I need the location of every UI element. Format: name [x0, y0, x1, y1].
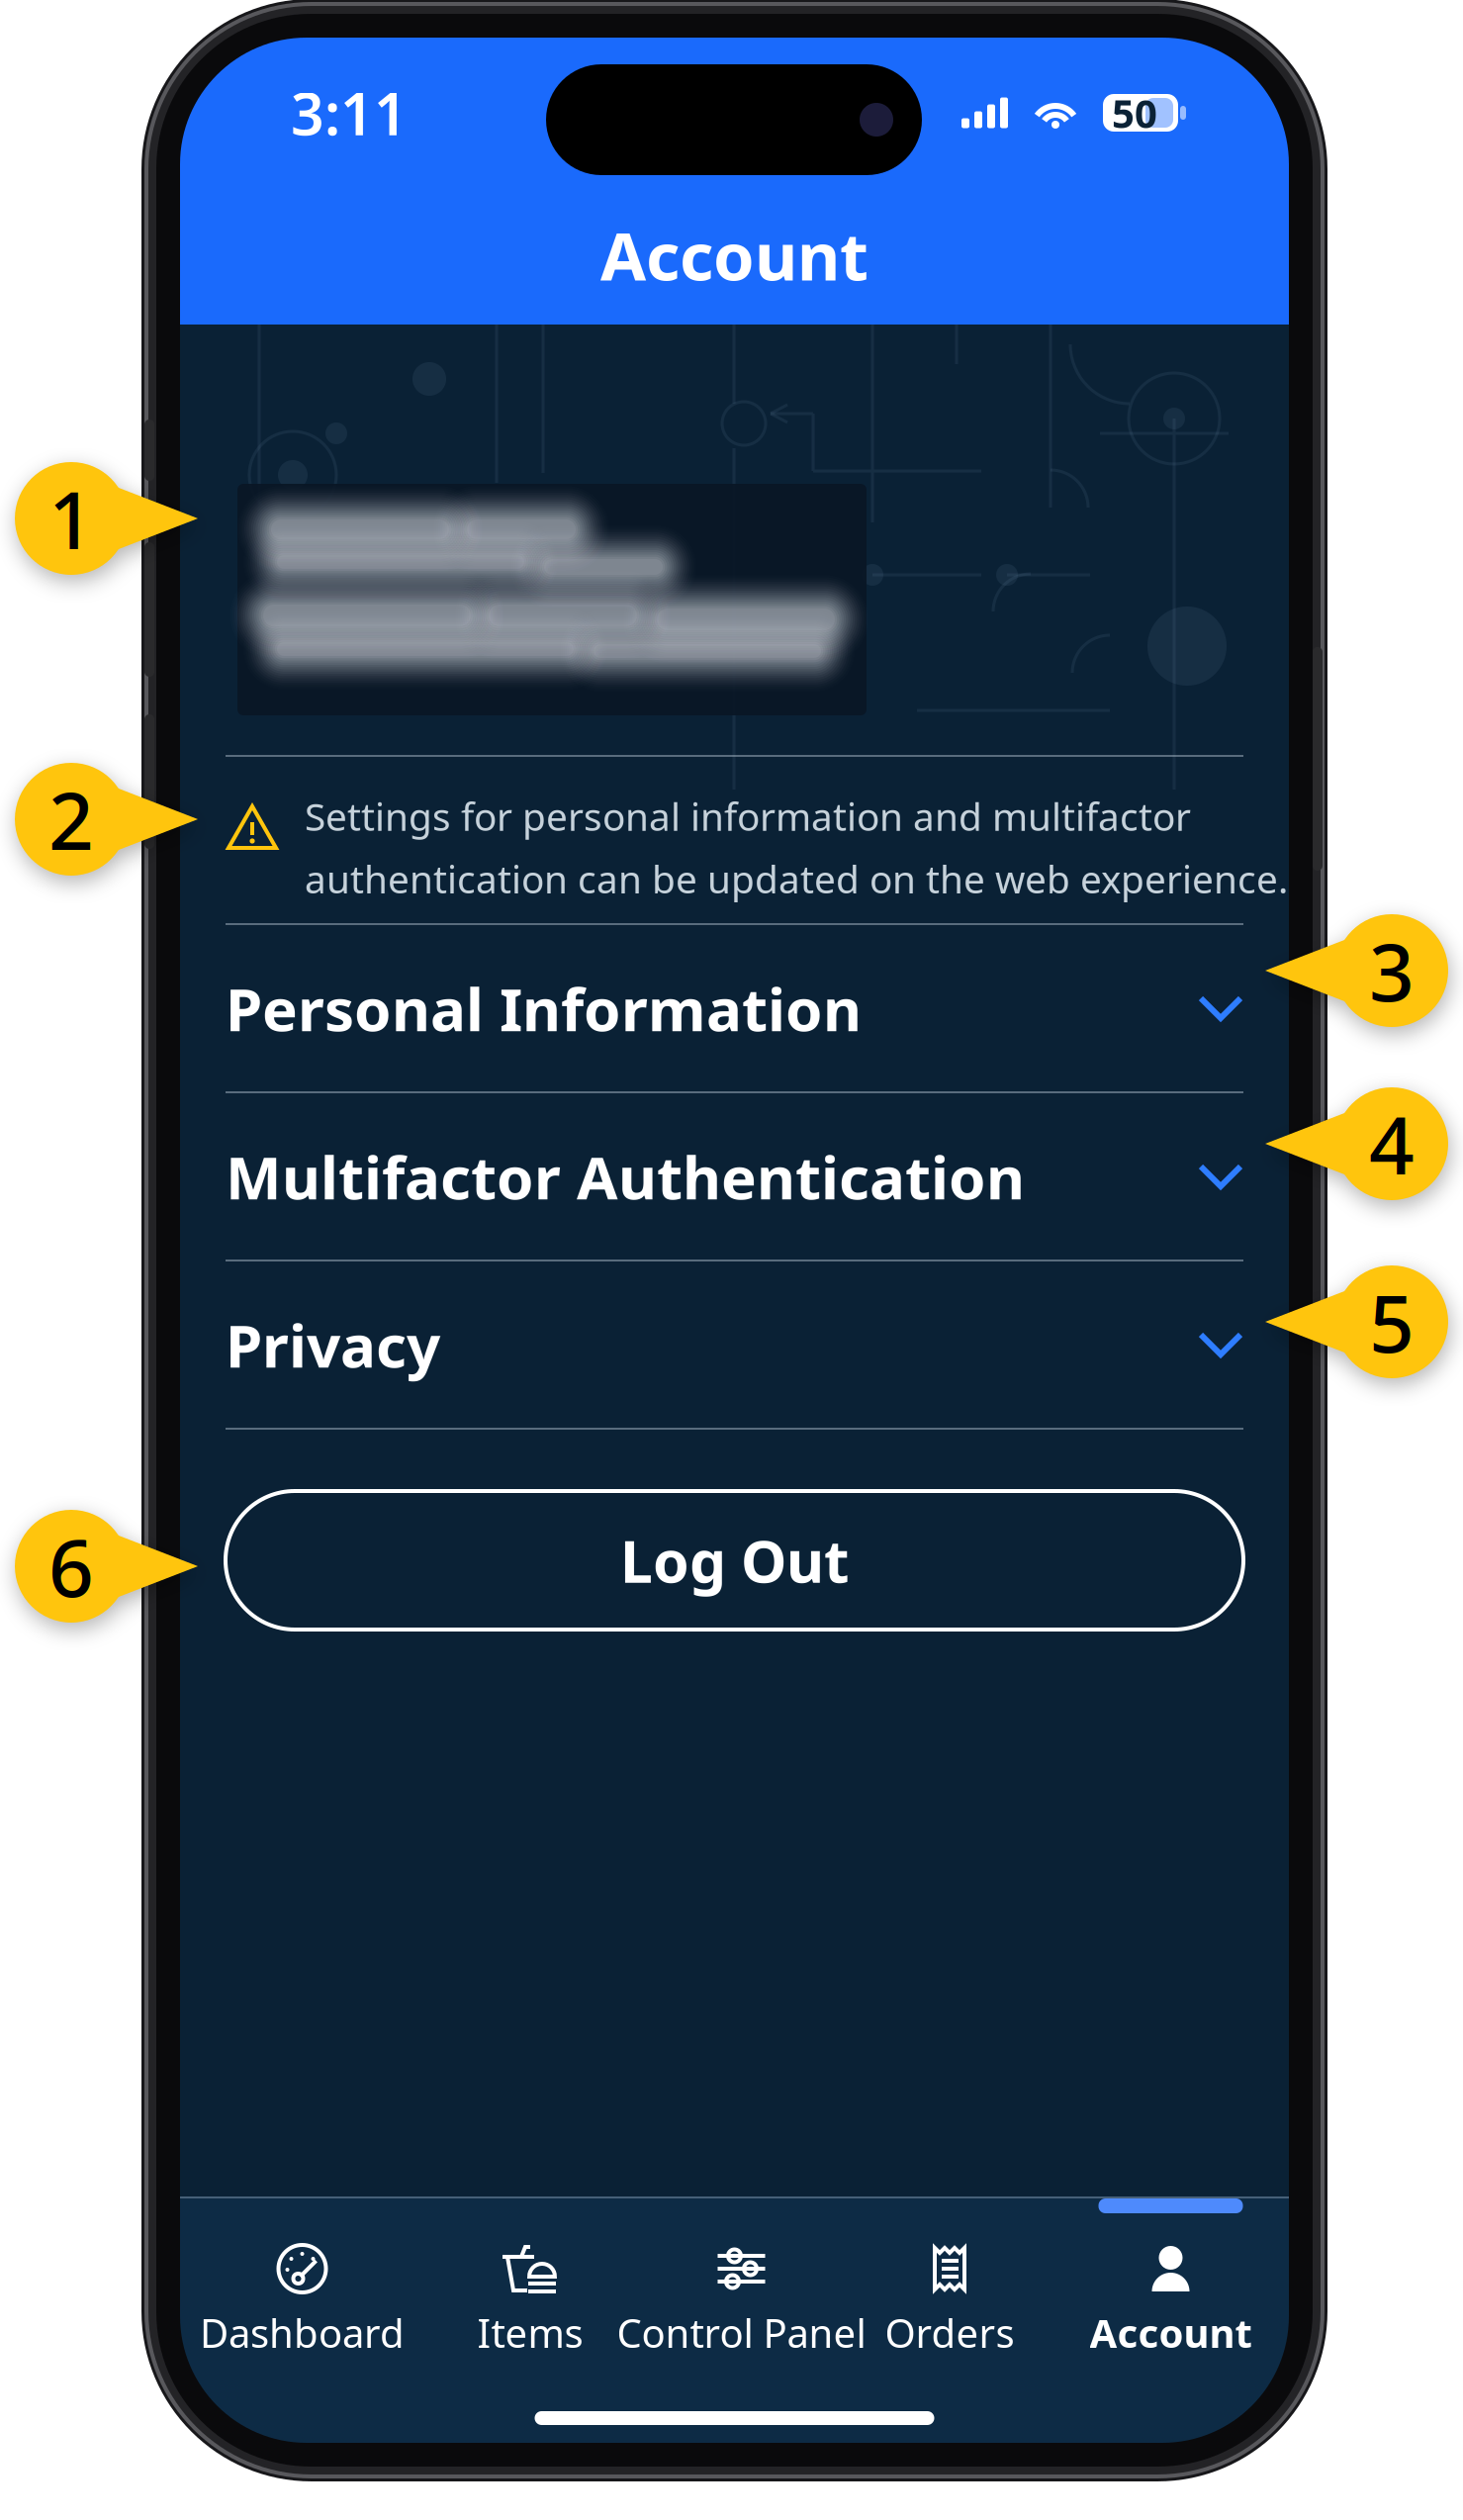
button[interactable]: Dashboard [180, 2198, 424, 2386]
staticText: Personal Information [226, 969, 862, 1048]
staticText: Privacy [226, 1305, 440, 1384]
staticText: Settings for personal information and mu… [305, 791, 1191, 841]
button[interactable]: Multifactor Authentication [226, 1093, 1243, 1260]
staticText: 1 [48, 466, 94, 571]
staticText: 3:11 [291, 74, 408, 151]
button[interactable]: Account [1052, 2198, 1289, 2386]
staticText: Items [477, 2306, 583, 2359]
staticText: Multifactor Authentication [226, 1137, 1025, 1216]
staticText: 3 [1369, 918, 1415, 1023]
staticText: 50 [1112, 86, 1157, 139]
staticText: 5 [1369, 1269, 1415, 1374]
staticText: Log Out [620, 1522, 849, 1599]
staticText: Control Panel [617, 2306, 866, 2359]
button[interactable]: Log Out [226, 1491, 1243, 1630]
button[interactable]: Personal Information [226, 925, 1243, 1091]
staticText: Dashboard [200, 2306, 405, 2359]
staticText: Account [1090, 2306, 1252, 2359]
staticText: Orders [885, 2306, 1014, 2359]
staticText: Account [600, 211, 869, 299]
staticText: 2 [48, 767, 94, 872]
button[interactable]: Privacy [226, 1261, 1243, 1428]
staticText: 4 [1369, 1091, 1415, 1196]
staticText: 6 [48, 1514, 94, 1619]
button[interactable]: Orders [847, 2198, 1052, 2386]
staticText: authentication can be updated on the web… [305, 853, 1288, 904]
button[interactable]: Control Panel [636, 2198, 847, 2386]
button[interactable]: Items [424, 2198, 636, 2386]
